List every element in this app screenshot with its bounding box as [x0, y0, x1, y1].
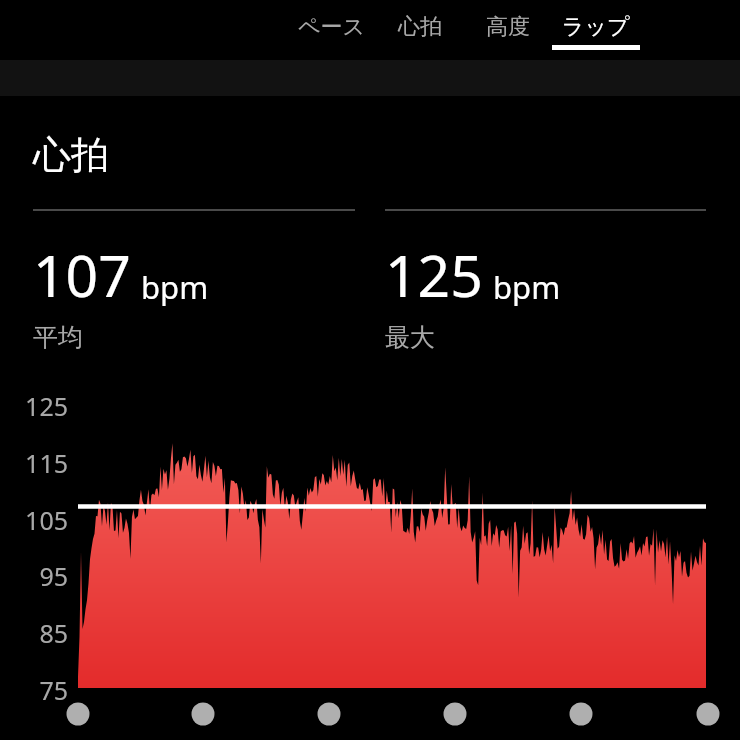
button[interactable]: ペース: [288, 13, 376, 50]
staticText: 高度: [486, 13, 530, 41]
staticText: 105: [25, 503, 68, 537]
button[interactable]: 107: [33, 236, 209, 353]
staticText: 心拍: [33, 131, 109, 179]
staticText: bpm: [141, 266, 209, 308]
button[interactable]: 高度: [464, 13, 552, 50]
staticText: 85: [39, 616, 68, 650]
staticText: 125: [385, 236, 483, 314]
staticText: 75: [39, 673, 68, 707]
staticText: 107: [33, 236, 131, 314]
staticText: 125: [25, 389, 68, 423]
staticText: bpm: [493, 266, 561, 308]
staticText: 平均: [33, 322, 83, 353]
button[interactable]: ラップ: [552, 13, 640, 50]
staticText: ラップ: [562, 13, 630, 41]
staticText: 最大: [385, 322, 435, 353]
staticText: 95: [39, 559, 68, 593]
staticText: 心拍: [398, 13, 442, 41]
staticText: 115: [25, 446, 68, 480]
button[interactable]: 125: [385, 236, 561, 353]
button[interactable]: 心拍: [376, 13, 464, 50]
staticText: ペース: [298, 13, 366, 41]
